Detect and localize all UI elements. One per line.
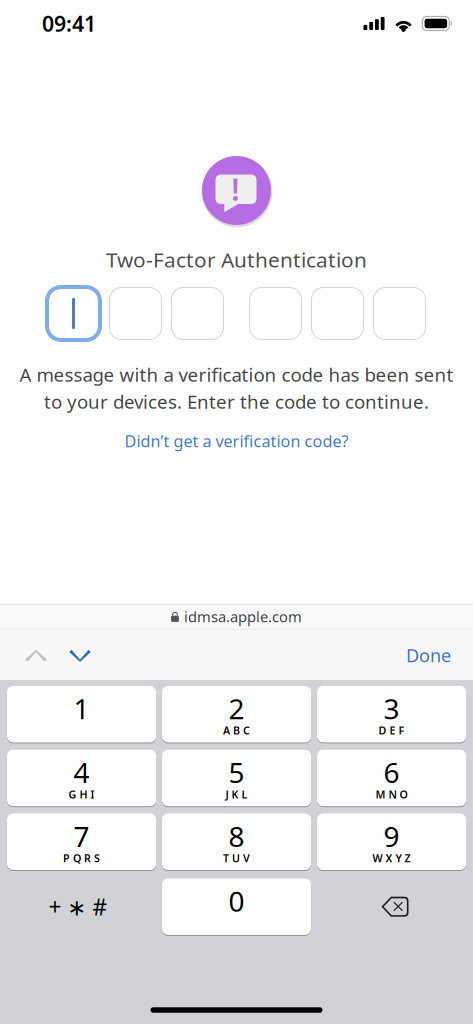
button[interactable]: Done bbox=[381, 630, 451, 680]
button[interactable]: Verification code digit bbox=[371, 285, 427, 341]
button[interactable]: Verification code digit bbox=[107, 285, 163, 341]
staticText: Two-Factor Authentication bbox=[106, 245, 367, 274]
button[interactable]: 0 bbox=[162, 878, 311, 935]
button[interactable]: Verification code digit bbox=[45, 285, 101, 341]
staticText: 0 bbox=[228, 882, 244, 920]
staticText: G H I bbox=[68, 787, 94, 801]
staticText: Didn’t get a verification code? bbox=[124, 430, 348, 452]
button[interactable]: 7 bbox=[7, 813, 156, 870]
staticText: W X Y Z bbox=[372, 851, 410, 865]
staticText: 1 bbox=[73, 690, 89, 727]
button[interactable]: Delete bbox=[317, 878, 466, 935]
staticText: J K L bbox=[225, 787, 247, 801]
staticText: to your devices. Enter the code to conti… bbox=[44, 389, 429, 414]
staticText: A B C bbox=[223, 723, 250, 738]
button[interactable]: Verification code digit bbox=[169, 285, 225, 341]
staticText: 5 bbox=[228, 754, 244, 791]
button[interactable]: Next field bbox=[58, 630, 102, 680]
staticText: + ∗ # bbox=[48, 892, 107, 922]
button[interactable]: 9 bbox=[317, 813, 466, 870]
staticText: 4 bbox=[73, 754, 89, 791]
staticText: idmsa.apple.com bbox=[184, 606, 302, 626]
button[interactable]: 5 bbox=[162, 750, 311, 806]
button[interactable]: 2 bbox=[162, 686, 311, 742]
staticText: T U V bbox=[223, 851, 250, 865]
staticText: 9 bbox=[383, 817, 399, 855]
staticText: 6 bbox=[383, 754, 399, 791]
button[interactable]: Previous field bbox=[14, 630, 58, 680]
button[interactable]: Verification code digit bbox=[247, 285, 303, 341]
staticText: 09:41 bbox=[42, 9, 96, 38]
staticText: P Q R S bbox=[63, 851, 100, 865]
button[interactable]: 6 bbox=[317, 750, 466, 806]
button[interactable]: 4 bbox=[7, 750, 156, 806]
staticText: D E F bbox=[378, 723, 404, 738]
staticText: A message with a verification code has b… bbox=[19, 362, 453, 387]
staticText: M N O bbox=[375, 787, 407, 801]
staticText: 8 bbox=[228, 817, 244, 855]
button[interactable]: 1 bbox=[7, 686, 156, 742]
button[interactable]: 3 bbox=[317, 686, 466, 742]
staticText: 3 bbox=[383, 690, 399, 727]
staticText: Done bbox=[406, 643, 451, 668]
button[interactable]: 8 bbox=[162, 813, 311, 870]
button[interactable]: Verification code digit bbox=[309, 285, 365, 341]
button[interactable]: Symbols bbox=[7, 878, 156, 935]
button[interactable]: Didn’t get a verification code? bbox=[106, 428, 366, 454]
staticText: 7 bbox=[73, 817, 89, 855]
staticText: 2 bbox=[228, 690, 244, 727]
